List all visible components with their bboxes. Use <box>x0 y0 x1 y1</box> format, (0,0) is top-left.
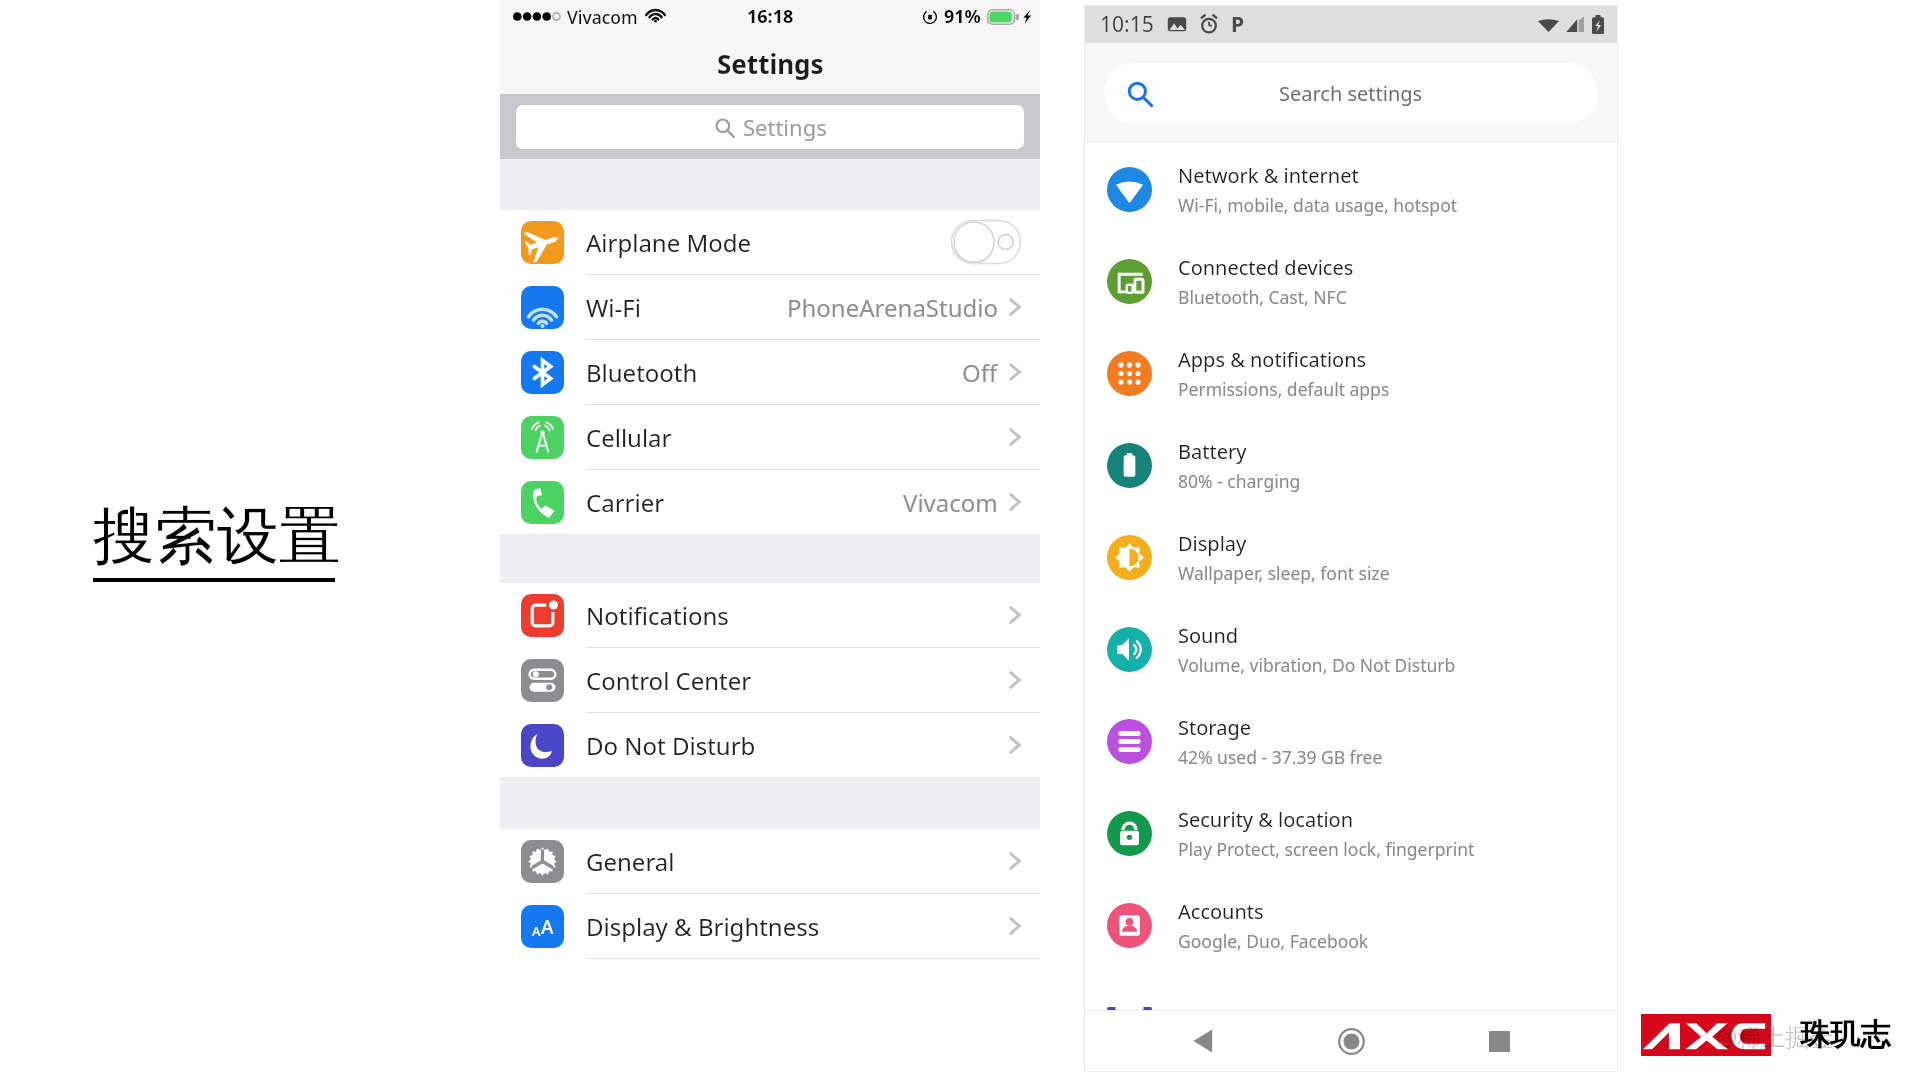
button[interactable]: Accessibility <box>1084 1007 1618 1010</box>
staticText: A <box>532 922 541 940</box>
button[interactable]: Notifications <box>500 583 1040 647</box>
button[interactable]: Back <box>1174 1012 1232 1070</box>
button[interactable]: Accounts <box>1084 879 1618 971</box>
button[interactable]: Storage <box>1084 695 1618 787</box>
button[interactable]: Carrier <box>500 470 1040 534</box>
staticText: Security & location <box>1178 806 1354 833</box>
button[interactable]: Do Not Disturb <box>500 713 1040 777</box>
button[interactable]: Connected devices <box>1084 235 1618 327</box>
staticText: Bluetooth <box>586 356 698 389</box>
staticText: General <box>586 845 675 878</box>
button[interactable]: Sound <box>1084 603 1618 695</box>
staticText: @稀土掘金 <box>1716 1020 1834 1053</box>
button[interactable]: AXC logo <box>1641 1014 1771 1056</box>
button[interactable]: Display <box>1084 511 1618 603</box>
staticText: Off <box>962 356 998 389</box>
button[interactable]: General <box>500 829 1040 893</box>
staticText: 珠玑志 <box>1800 1016 1890 1054</box>
staticText: Wi-Fi, mobile, data usage, hotspot <box>1178 193 1458 217</box>
staticText: Control Center <box>586 664 752 697</box>
staticText: Settings <box>717 46 824 81</box>
button[interactable]: Battery <box>1084 419 1618 511</box>
staticText: Airplane Mode <box>586 226 752 259</box>
staticText: PhoneArenaStudio <box>787 291 998 324</box>
staticText: Notifications <box>586 599 729 632</box>
button[interactable]: A <box>500 894 1040 958</box>
button[interactable]: Security & location <box>1084 787 1618 879</box>
staticText: Display & Brightness <box>586 910 820 943</box>
staticText: 搜索设置 <box>93 497 341 575</box>
button[interactable]: Airplane Mode toggle <box>951 220 1021 264</box>
staticText: Storage <box>1178 714 1251 741</box>
staticText: Battery <box>1178 438 1247 465</box>
button[interactable]: Settings <box>516 105 1024 149</box>
staticText: Settings <box>743 112 827 142</box>
staticText: P <box>1231 10 1245 39</box>
staticText: Sound <box>1178 622 1239 649</box>
button[interactable]: Home <box>1322 1012 1380 1070</box>
staticText: Cellular <box>586 421 672 454</box>
staticText: Permissions, default apps <box>1178 377 1390 401</box>
staticText: 80% - charging <box>1178 469 1301 493</box>
button[interactable]: Recent apps <box>1470 1012 1528 1070</box>
button[interactable]: Cellular <box>500 405 1040 469</box>
button[interactable]: Network & internet <box>1084 143 1618 235</box>
staticText: 42% used - 37.39 GB free <box>1178 745 1383 769</box>
button[interactable]: Airplane Mode <box>500 210 1040 274</box>
staticText: Accounts <box>1178 898 1264 925</box>
button[interactable]: Control Center <box>500 648 1040 712</box>
staticText: Network & internet <box>1178 162 1359 189</box>
staticText: 10:15 <box>1100 10 1154 39</box>
staticText: Search settings <box>1279 80 1423 107</box>
staticText: 16:18 <box>747 4 794 29</box>
staticText: Display <box>1178 530 1247 557</box>
staticText: Apps & notifications <box>1178 346 1367 373</box>
staticText: Wallpaper, sleep, font size <box>1178 561 1390 585</box>
staticText: Bluetooth, Cast, NFC <box>1178 285 1347 309</box>
staticText: A <box>541 914 554 940</box>
staticText: Do Not Disturb <box>586 729 756 762</box>
button[interactable]: Search settings <box>1104 63 1598 124</box>
staticText: Wi-Fi <box>586 291 641 324</box>
staticText: Carrier <box>586 486 665 519</box>
staticText: Vivacom <box>567 5 638 29</box>
staticText: Google, Duo, Facebook <box>1178 929 1369 953</box>
button[interactable]: Bluetooth <box>500 340 1040 404</box>
button[interactable]: Apps & notifications <box>1084 327 1618 419</box>
staticText: 91% <box>944 4 981 29</box>
staticText: Connected devices <box>1178 254 1354 281</box>
button[interactable]: Wi-Fi <box>500 275 1040 339</box>
staticText: Volume, vibration, Do Not Disturb <box>1178 653 1456 677</box>
staticText: Play Protect, screen lock, fingerprint <box>1178 837 1475 861</box>
staticText: Vivacom <box>903 486 998 519</box>
